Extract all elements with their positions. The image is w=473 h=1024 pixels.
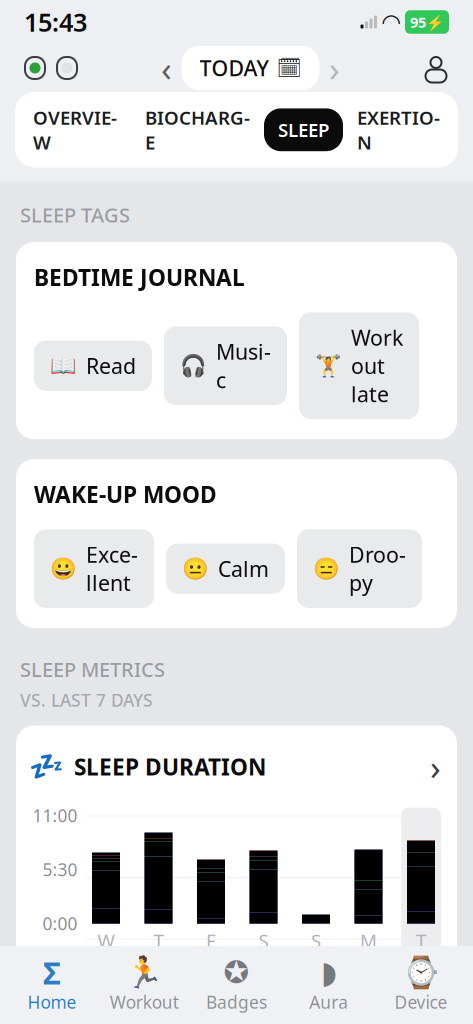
staticText: BEDTIME JOURNAL — [34, 262, 245, 292]
button[interactable]: Devices — [22, 49, 80, 87]
staticText: 11:00 — [32, 804, 77, 827]
staticText: T — [416, 928, 426, 953]
button[interactable]: 🎧 — [164, 326, 287, 405]
staticText: SLEEP — [278, 117, 329, 142]
staticText: Workout — [110, 990, 179, 1013]
staticText: 15:43 — [24, 5, 87, 39]
staticText: ‹ — [161, 45, 172, 91]
staticText: Home — [28, 990, 77, 1013]
staticText: 🏃 — [125, 955, 163, 990]
staticText: 0:00 — [42, 912, 77, 935]
staticText: S — [311, 928, 321, 953]
staticText: Droopy — [349, 540, 406, 597]
button[interactable]: 💤 — [32, 744, 441, 790]
staticText: 😑 — [313, 556, 340, 581]
button[interactable]: BIOCHARGE — [131, 96, 264, 164]
staticText: Music — [216, 337, 271, 394]
staticText: › — [430, 1004, 441, 1024]
staticText: SLEEP METRICS — [20, 656, 165, 683]
staticText: 5:30 — [42, 858, 77, 881]
staticText: SLEEP DURATION — [74, 751, 266, 782]
staticText: BIOCHARGE — [145, 105, 250, 155]
staticText: Badges — [206, 990, 267, 1013]
staticText: Calm — [218, 554, 269, 583]
button[interactable]: SLEEP — [264, 108, 343, 151]
staticText: Device — [394, 990, 447, 1013]
staticText: EXERTION — [357, 105, 440, 155]
staticText: T — [153, 928, 163, 953]
staticText: W — [97, 928, 114, 953]
button[interactable]: ✪ — [190, 950, 283, 1019]
staticText: › — [430, 744, 441, 790]
staticText: 💤 — [28, 751, 63, 783]
button[interactable]: Profile — [421, 53, 451, 83]
staticText: OVERVIEW — [33, 105, 117, 155]
button[interactable]: EXERTION — [343, 96, 454, 164]
staticText: 😀 — [50, 556, 77, 581]
staticText: ⌚ — [402, 955, 440, 990]
staticText: ◗ — [321, 955, 337, 990]
button[interactable]: 😑 — [297, 529, 422, 608]
staticText: Excellent — [86, 540, 138, 597]
staticText: 🎧 — [180, 353, 207, 378]
staticText: Aura — [309, 990, 348, 1013]
button[interactable]: OVERVIEW — [19, 96, 131, 164]
button[interactable]: TODAY — [181, 46, 319, 90]
staticText: Σ — [43, 952, 61, 993]
button[interactable]: Next day — [319, 51, 349, 85]
staticText: F — [206, 928, 216, 953]
button[interactable]: 😀 — [34, 529, 154, 608]
button[interactable]: ◗ — [283, 950, 375, 1019]
button[interactable]: 😐 — [166, 543, 285, 594]
staticText: ◠ — [382, 9, 399, 35]
staticText: Work out late — [351, 323, 403, 408]
button[interactable]: Previous day — [151, 51, 181, 85]
staticText: WAKE-UP MOOD — [34, 479, 217, 509]
staticText: TODAY — [199, 54, 268, 82]
staticText: › — [329, 45, 340, 91]
staticText: VS. LAST 7 DAYS — [20, 689, 153, 712]
button[interactable]: 📖 — [34, 341, 152, 391]
staticText: SLEEP TAGS — [20, 202, 130, 228]
button[interactable]: ⌚ — [375, 950, 467, 1019]
button[interactable]: 🌙 — [0, 984, 473, 1024]
staticText: ✪ — [223, 955, 249, 990]
staticText: Read — [86, 352, 136, 380]
staticText: 📖 — [50, 353, 77, 378]
button[interactable]: Σ — [6, 950, 98, 1019]
staticText: 😐 — [182, 556, 209, 581]
staticText: M — [360, 928, 377, 953]
staticText: 95⚡ — [410, 12, 444, 32]
staticText: 🗓 — [276, 57, 301, 79]
staticText: S — [258, 928, 268, 953]
button[interactable]: 🏃 — [98, 950, 190, 1019]
button[interactable]: 🏋 — [299, 312, 419, 419]
staticText: 🏋 — [315, 353, 342, 378]
